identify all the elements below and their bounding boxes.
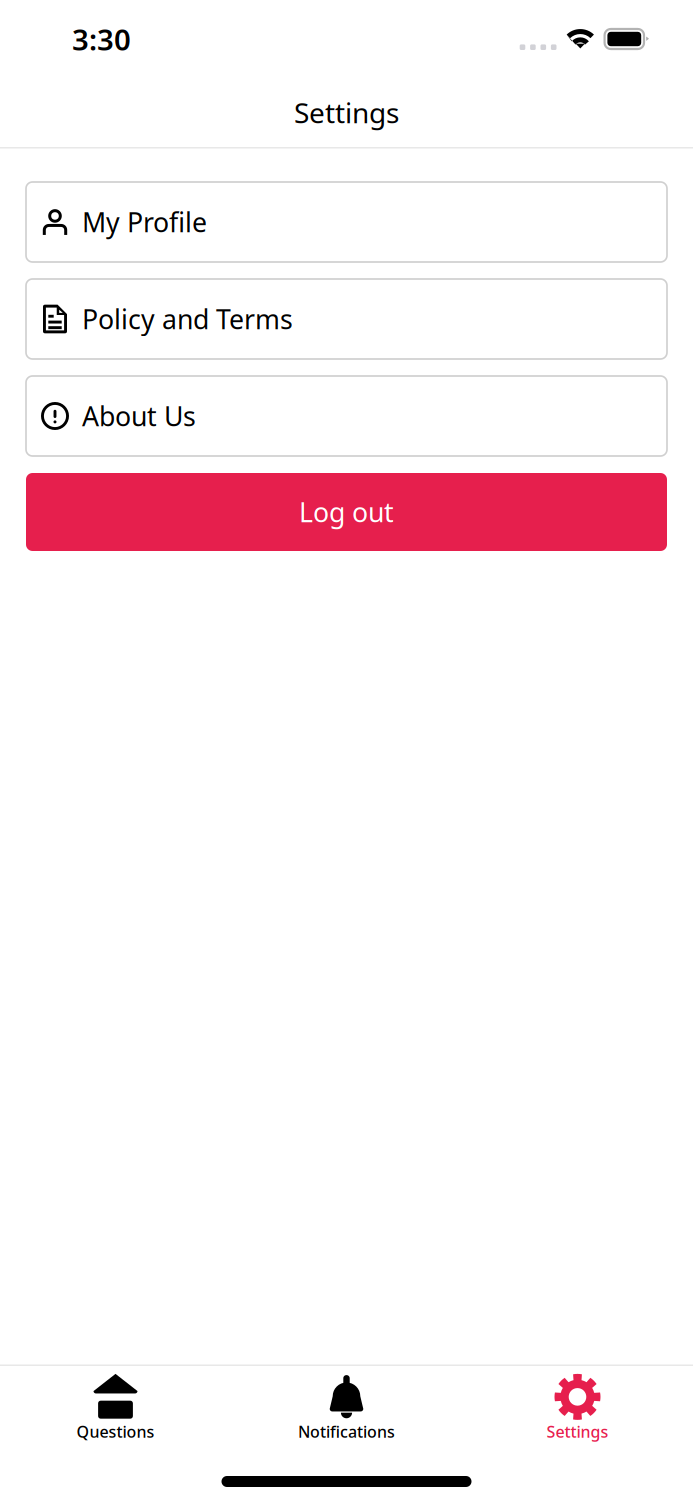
staticText: Settings bbox=[294, 94, 399, 131]
button[interactable]: Notifications bbox=[231, 1366, 462, 1442]
staticText: About Us bbox=[82, 398, 196, 434]
staticText: Settings bbox=[546, 1421, 608, 1442]
button[interactable]: Policy and Terms bbox=[26, 279, 667, 359]
staticText: My Profile bbox=[82, 204, 207, 240]
button[interactable]: Questions bbox=[0, 1366, 231, 1442]
staticText: Policy and Terms bbox=[82, 301, 293, 337]
button[interactable]: About Us bbox=[26, 376, 667, 456]
staticText: 3:30 bbox=[72, 19, 131, 58]
button[interactable]: My Profile bbox=[26, 182, 667, 262]
staticText: Questions bbox=[76, 1421, 154, 1442]
staticText: Notifications bbox=[298, 1421, 395, 1442]
button[interactable]: Settings bbox=[462, 1366, 693, 1442]
button[interactable]: Log out bbox=[26, 473, 667, 551]
staticText: Log out bbox=[299, 494, 394, 530]
